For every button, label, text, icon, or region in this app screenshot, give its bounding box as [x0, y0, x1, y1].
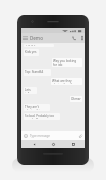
staticText: What are they playing there?: [52, 79, 81, 84]
button[interactable]: Call: [70, 33, 78, 43]
button[interactable]: Menu: [21, 33, 30, 43]
button[interactable]: They are't playing this: [24, 104, 50, 111]
button[interactable]: Top: Stand64 course: [24, 69, 51, 76]
button[interactable]: Home: [46, 140, 60, 148]
button[interactable]: Way you looking for job: [52, 58, 82, 67]
button[interactable]: More options: [78, 33, 85, 43]
button[interactable]: Lets talk: [24, 87, 37, 94]
staticText: Top: Stand64 course: [25, 70, 50, 75]
button[interactable]: Back: [27, 140, 41, 148]
button[interactable]: Attach: [77, 133, 83, 139]
staticText: They are't playing this: [25, 105, 49, 110]
button[interactable]: Okmar: [70, 96, 82, 102]
button[interactable]: So bad. Probably too easy hoffa: [24, 113, 60, 120]
staticText: Type message: [30, 134, 77, 138]
staticText: So bad. Probably too easy hoffa: [25, 114, 59, 119]
button[interactable]: Recent apps: [66, 140, 80, 148]
staticText: shfhfhf: [25, 45, 36, 46]
staticText: Demo: [30, 35, 43, 41]
staticText: Way you looking for job: [53, 59, 81, 66]
button[interactable]: Emoji: [21, 131, 85, 140]
button[interactable]: Emoji: [23, 133, 29, 139]
staticText: Kids yes: [25, 50, 37, 54]
button[interactable]: shfhfhf: [24, 44, 54, 47]
button[interactable]: What are they playing there?: [51, 78, 82, 85]
staticText: Okmar: [71, 97, 81, 101]
staticText: Lets talk: [25, 88, 36, 93]
button[interactable]: Kids yes: [24, 49, 39, 56]
